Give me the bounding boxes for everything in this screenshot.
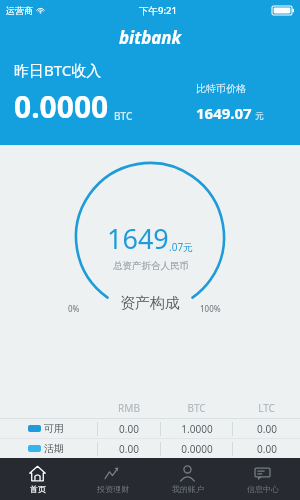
staticText: 1649: [107, 220, 169, 257]
staticText: 比特币价格: [196, 82, 246, 95]
staticText: LTC: [258, 401, 275, 415]
staticText: 资产构成: [120, 294, 180, 313]
staticText: RMB: [118, 401, 140, 415]
staticText: 下午9:21: [139, 4, 177, 17]
staticText: 投资理财: [97, 484, 129, 494]
staticText: 0.00: [257, 442, 277, 456]
staticText: 信息中心: [247, 484, 279, 494]
staticText: 0.0000: [14, 86, 109, 127]
button[interactable]: 首页: [0, 458, 75, 500]
staticText: 活期: [44, 442, 64, 455]
button[interactable]: 我的账户: [150, 458, 225, 500]
staticText: 可用: [44, 422, 64, 435]
staticText: 总资产折合人民币: [113, 260, 189, 272]
staticText: 100%: [200, 303, 221, 314]
staticText: 我的账户: [172, 484, 204, 494]
staticText: 运营商: [6, 5, 33, 16]
button[interactable]: 可用: [0, 419, 300, 438]
button[interactable]: 信息中心: [225, 458, 300, 500]
staticText: bitbank: [119, 26, 182, 49]
staticText: BTC: [187, 401, 206, 415]
staticText: 0.0000: [181, 442, 213, 456]
button[interactable]: 活期: [0, 439, 300, 458]
staticText: .07元: [169, 240, 194, 254]
staticText: BTC: [114, 109, 133, 123]
staticText: 首页: [30, 484, 46, 494]
staticText: 元: [255, 111, 264, 122]
staticText: 0.00: [119, 442, 139, 456]
staticText: 1649.07: [196, 103, 252, 123]
staticText: 1.0000: [181, 422, 213, 436]
staticText: 0.00: [119, 422, 139, 436]
staticText: 0%: [68, 303, 80, 314]
staticText: 昨日BTC收入: [14, 60, 102, 80]
button[interactable]: 投资理财: [75, 458, 150, 500]
staticText: 0.00: [257, 422, 277, 436]
